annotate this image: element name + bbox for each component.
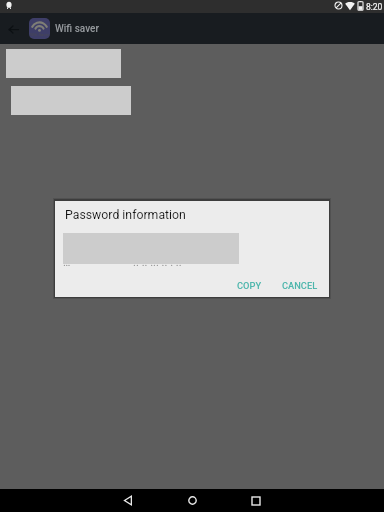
button[interactable]: Wifi Saver	[29, 18, 99, 39]
staticText: CANCEL	[282, 280, 318, 291]
button[interactable]: COPY	[232, 275, 267, 296]
staticText: Wifi Saver	[30, 32, 50, 37]
staticText: … .. .. ... .. . ..	[63, 256, 182, 269]
button[interactable]: Home	[176, 489, 208, 512]
staticText: Password information	[65, 208, 186, 222]
staticText: Wifi saver	[55, 23, 99, 35]
button[interactable]: Back	[112, 489, 144, 512]
button[interactable]: Recent apps	[240, 489, 272, 512]
staticText: COPY	[237, 280, 262, 291]
button[interactable]: CANCEL	[277, 275, 323, 296]
staticText: 8:20	[366, 2, 383, 12]
